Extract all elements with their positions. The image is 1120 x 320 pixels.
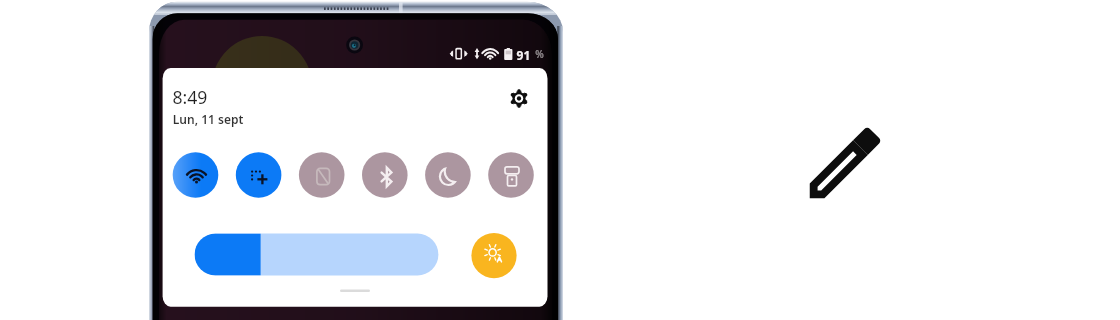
button[interactable]: Edit [798, 116, 892, 210]
